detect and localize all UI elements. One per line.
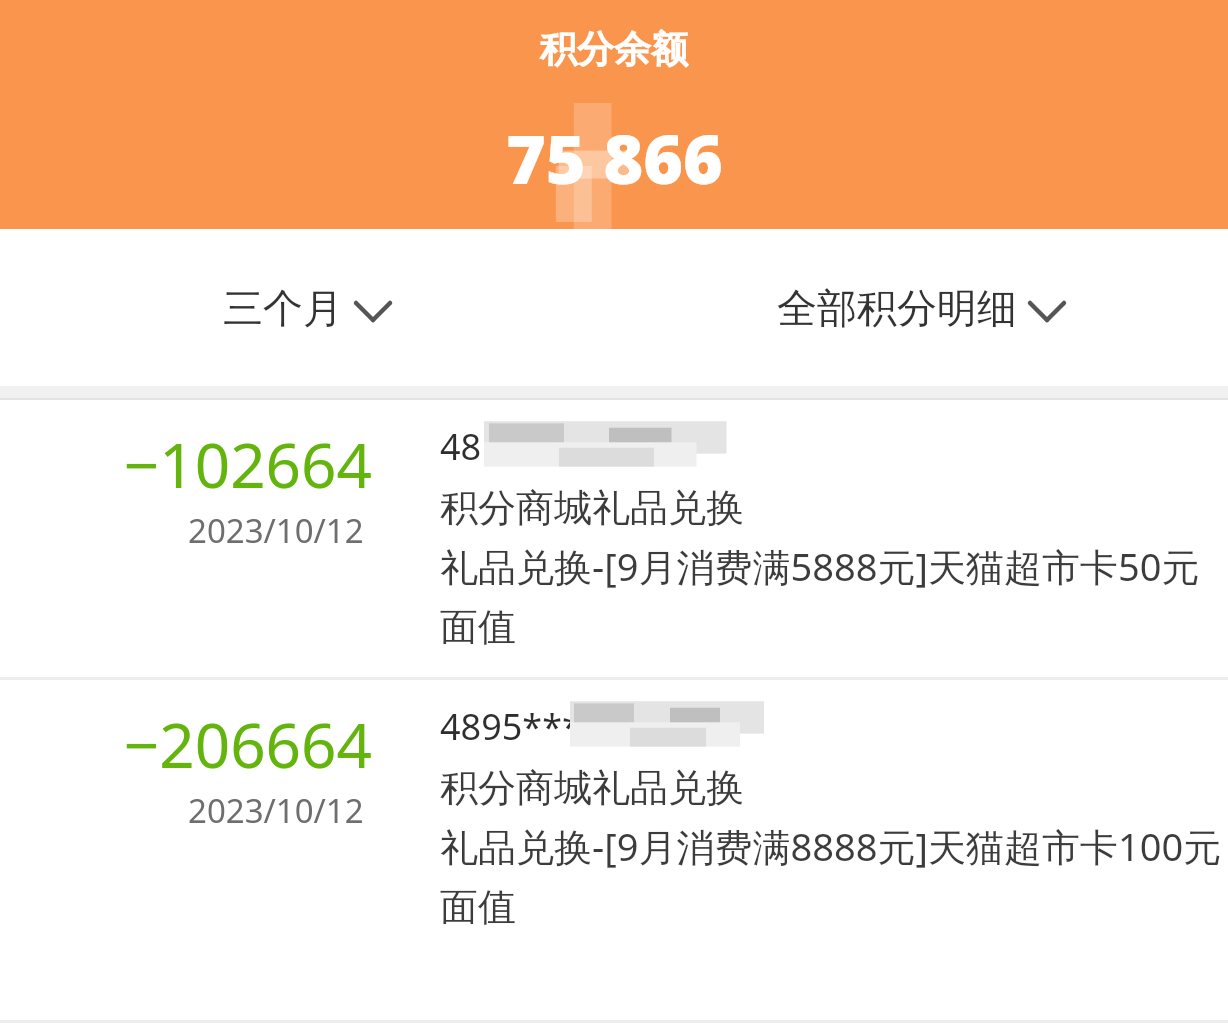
staticText: −206664 (123, 702, 372, 786)
staticText: 礼品兑换-[9月消费满8888元]天猫超市卡100元面值 (440, 820, 1222, 931)
staticText: 2023/10/12 (188, 508, 364, 553)
staticText: 礼品兑换-[9月消费满5888元]天猫超市卡50元面值 (440, 540, 1222, 651)
staticText: −102664 (123, 422, 372, 506)
staticText: 积分余额 (540, 26, 688, 73)
staticText: 48 (440, 422, 482, 471)
staticText: 积分商城礼品兑换 (440, 484, 744, 532)
button[interactable]: −206664 (0, 680, 1228, 957)
staticText: 75 866 (506, 111, 723, 204)
button[interactable]: 全部积分明细 (771, 273, 1071, 343)
staticText: 积分商城礼品兑换 (440, 764, 744, 812)
staticText: 4895*** (440, 702, 582, 751)
button[interactable]: 三个月 (217, 273, 397, 343)
staticText: 全部积分明细 (777, 283, 1017, 333)
button[interactable]: −102664 (0, 400, 1228, 677)
staticText: 三个月 (223, 283, 343, 333)
staticText: 2023/10/12 (188, 788, 364, 833)
